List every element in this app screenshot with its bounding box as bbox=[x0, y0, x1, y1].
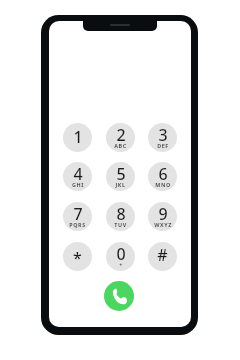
button[interactable]: 0 bbox=[106, 242, 135, 271]
button[interactable]: 3 bbox=[148, 123, 177, 152]
staticText: MNO bbox=[155, 181, 171, 188]
button[interactable]: 7 bbox=[63, 202, 92, 231]
staticText: GHI bbox=[72, 181, 84, 188]
staticText: + bbox=[119, 261, 123, 268]
button[interactable]: # bbox=[148, 242, 177, 271]
staticText: PQRS bbox=[69, 221, 86, 228]
staticText: * bbox=[73, 247, 82, 269]
button[interactable]: 9 bbox=[148, 202, 177, 231]
staticText: 7 bbox=[73, 203, 83, 225]
staticText: # bbox=[157, 244, 168, 266]
button[interactable]: 1 bbox=[63, 123, 92, 152]
staticText: 5 bbox=[116, 163, 126, 185]
button[interactable]: Call bbox=[104, 281, 134, 311]
staticText: TUV bbox=[114, 221, 127, 228]
button[interactable]: 4 bbox=[63, 162, 92, 191]
staticText: 2 bbox=[116, 124, 126, 146]
staticText: 4 bbox=[73, 163, 83, 185]
button[interactable]: 2 bbox=[106, 123, 135, 152]
staticText: 9 bbox=[158, 203, 168, 225]
staticText: ABC bbox=[114, 142, 127, 149]
staticText: DEF bbox=[157, 142, 169, 149]
button[interactable]: 8 bbox=[106, 202, 135, 231]
staticText: 3 bbox=[158, 124, 168, 146]
button[interactable]: 5 bbox=[106, 162, 135, 191]
staticText: 1 bbox=[73, 126, 83, 148]
button[interactable]: * bbox=[63, 242, 92, 271]
staticText: JKL bbox=[115, 181, 126, 188]
staticText: WXYZ bbox=[154, 221, 172, 228]
staticText: 6 bbox=[158, 163, 168, 185]
staticText: 8 bbox=[116, 203, 126, 225]
button[interactable]: 6 bbox=[148, 162, 177, 191]
staticText: 0 bbox=[116, 243, 126, 265]
